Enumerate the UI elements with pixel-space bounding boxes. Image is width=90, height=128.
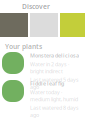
staticText: Discover [22, 2, 50, 11]
staticText: Last watered 5 days ago [30, 76, 79, 90]
staticText: Last watered 8 days ago [30, 104, 79, 118]
button[interactable]: Discover [22, 2, 50, 11]
button[interactable]: Fiddle leaf fig [2, 80, 88, 118]
staticText: Monstera deliciosa [30, 52, 79, 59]
button[interactable]: Monstera deliciosa [2, 52, 88, 90]
staticText: Fiddle leaf fig [30, 80, 64, 87]
staticText: Water in 2 days · bright indirect [30, 61, 69, 75]
staticText: Your plants [5, 42, 42, 51]
staticText: Water today · medium light, humid [30, 89, 78, 103]
